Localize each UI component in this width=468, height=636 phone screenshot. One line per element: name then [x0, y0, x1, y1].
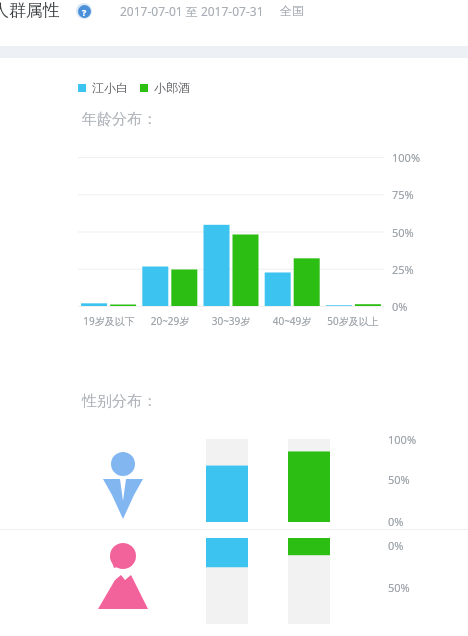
staticText: ?	[82, 6, 87, 18]
staticText: 100%	[388, 432, 417, 447]
staticText: 全国	[280, 3, 304, 18]
staticText: 人群属性	[0, 0, 60, 21]
staticText: 性别分布：	[82, 392, 157, 411]
staticText: 75%	[392, 187, 414, 202]
staticText: 0%	[392, 299, 408, 314]
staticText: 50%	[388, 580, 410, 595]
staticText: 40~49岁	[262, 314, 322, 328]
staticText: 100%	[392, 150, 421, 165]
staticText: 0%	[388, 538, 404, 553]
staticText: 0%	[388, 514, 404, 529]
staticText: 30~39岁	[201, 314, 261, 328]
staticText: 50岁及以上	[323, 314, 383, 328]
staticText: 年龄分布：	[82, 110, 157, 129]
staticText: 2017-07-01 至 2017-07-31	[120, 3, 264, 19]
staticText: 20~29岁	[140, 314, 200, 328]
staticText: 25%	[392, 262, 414, 277]
staticText: 小郎酒	[154, 80, 190, 95]
button[interactable]: Help	[76, 3, 92, 19]
staticText: 19岁及以下	[79, 314, 139, 328]
staticText: 50%	[392, 225, 414, 240]
staticText: 50%	[388, 472, 410, 487]
staticText: 江小白	[92, 80, 128, 95]
